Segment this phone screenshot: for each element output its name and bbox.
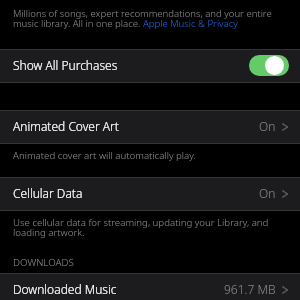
staticText: Animated cover art will automatically pl… (13, 151, 196, 161)
staticText: On (259, 185, 276, 201)
staticText: DOWNLOADS (13, 256, 74, 269)
button[interactable]: Show All Purchases (0, 49, 300, 83)
staticText: Millions of songs, expert recommendation… (13, 9, 291, 29)
staticText: Downloaded Music (13, 281, 117, 297)
staticText: Use cellular data for streaming, updatin… (13, 218, 281, 238)
button[interactable]: Cellular Data (0, 177, 300, 211)
button[interactable]: Animated Cover Art (0, 110, 300, 144)
button[interactable]: Downloaded Music (0, 273, 300, 300)
staticText: Animated Cover Art (13, 118, 119, 134)
staticText: On (259, 118, 276, 134)
button[interactable]: Show All Purchases toggle (249, 55, 289, 76)
staticText: Show All Purchases (13, 57, 118, 73)
staticText: Cellular Data (13, 185, 83, 201)
staticText: 961.7 MB (224, 281, 276, 297)
